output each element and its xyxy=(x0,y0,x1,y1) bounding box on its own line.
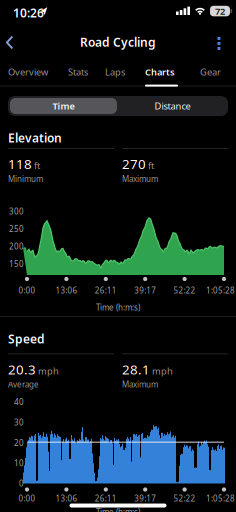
button[interactable]: Stats xyxy=(68,57,88,87)
staticText: 10 xyxy=(14,458,24,468)
staticText: 300 xyxy=(9,206,24,217)
staticText: 72 xyxy=(215,5,225,17)
staticText: Minimum xyxy=(8,174,43,184)
button[interactable]: Back xyxy=(0,28,26,56)
staticText: 1:05:28 xyxy=(206,493,235,504)
staticText: 13:06 xyxy=(55,285,77,296)
staticText: Stats xyxy=(68,66,88,78)
staticText: Distance xyxy=(154,100,190,112)
staticText: 28.1 xyxy=(122,360,150,378)
staticText: ft xyxy=(148,159,154,172)
staticText: 20.3 xyxy=(8,360,36,378)
staticText: Laps xyxy=(105,66,125,78)
button[interactable]: Laps xyxy=(105,57,125,87)
staticText: 1:05:28 xyxy=(206,285,235,296)
staticText: 150 xyxy=(9,259,24,269)
staticText: 52:22 xyxy=(174,285,196,296)
staticText: 30 xyxy=(14,417,24,428)
staticText: 52:22 xyxy=(174,493,196,504)
staticText: ft xyxy=(34,159,40,172)
staticText: Speed xyxy=(8,331,45,347)
staticText: mph xyxy=(38,365,59,377)
staticText: 270 xyxy=(122,155,146,173)
staticText: 39:17 xyxy=(134,493,156,504)
staticText: Average xyxy=(8,379,39,390)
staticText: 26:11 xyxy=(95,285,117,296)
staticText: 26:11 xyxy=(95,493,117,504)
staticText: 250 xyxy=(9,224,24,234)
staticText: 39:17 xyxy=(134,285,156,296)
staticText: Gear xyxy=(200,66,221,78)
staticText: 200 xyxy=(9,241,24,252)
staticText: 0:00 xyxy=(18,493,35,504)
staticText: 20 xyxy=(14,437,24,448)
button[interactable]: Distance xyxy=(119,98,226,114)
staticText: 118 xyxy=(8,155,32,173)
button[interactable]: Gear xyxy=(200,57,221,87)
staticText: 0 xyxy=(19,478,24,489)
staticText: 13:06 xyxy=(55,493,77,504)
staticText: 0:00 xyxy=(18,285,35,296)
staticText: Maximum xyxy=(122,174,158,184)
staticText: Time (h:m:s) xyxy=(96,507,140,512)
staticText: Charts xyxy=(145,66,175,78)
staticText: Time xyxy=(52,100,74,112)
button[interactable]: Overview xyxy=(8,57,48,87)
button[interactable]: Time xyxy=(10,98,117,114)
button[interactable]: Charts xyxy=(145,57,175,87)
staticText: Overview xyxy=(8,66,48,78)
staticText: 40 xyxy=(14,397,24,407)
staticText: 10:26 xyxy=(13,5,44,21)
staticText: Road Cycling xyxy=(80,34,156,50)
staticText: Elevation xyxy=(8,130,62,146)
staticText: Time (h:m:s) xyxy=(96,302,140,313)
staticText: mph xyxy=(152,365,173,377)
button[interactable]: More options xyxy=(208,28,236,56)
staticText: Maximum xyxy=(122,379,158,390)
